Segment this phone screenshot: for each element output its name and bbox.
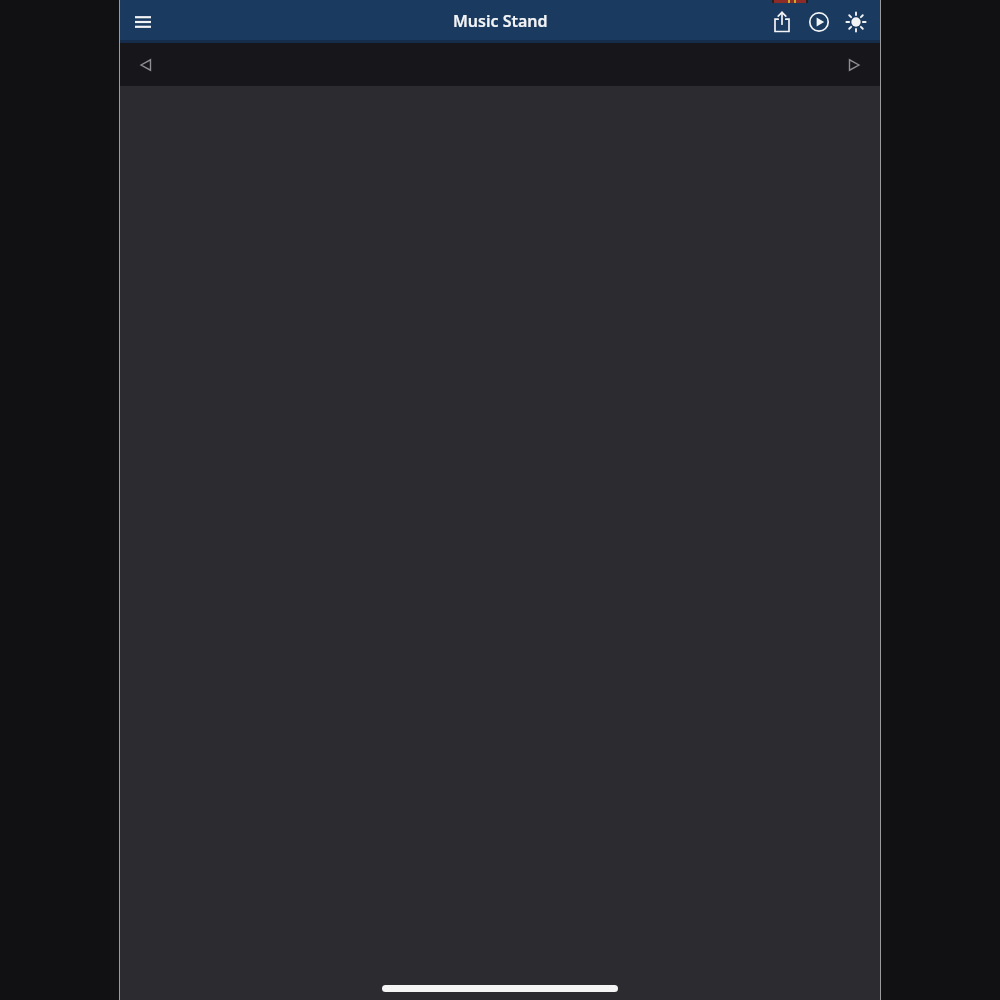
button[interactable]: [382, 985, 618, 992]
button[interactable]: [844, 10, 867, 33]
button[interactable]: [128, 7, 158, 37]
button[interactable]: [770, 10, 793, 33]
button[interactable]: [807, 10, 830, 33]
button[interactable]: [842, 53, 866, 77]
button[interactable]: [134, 53, 158, 77]
staticText: Music Stand: [453, 10, 548, 32]
